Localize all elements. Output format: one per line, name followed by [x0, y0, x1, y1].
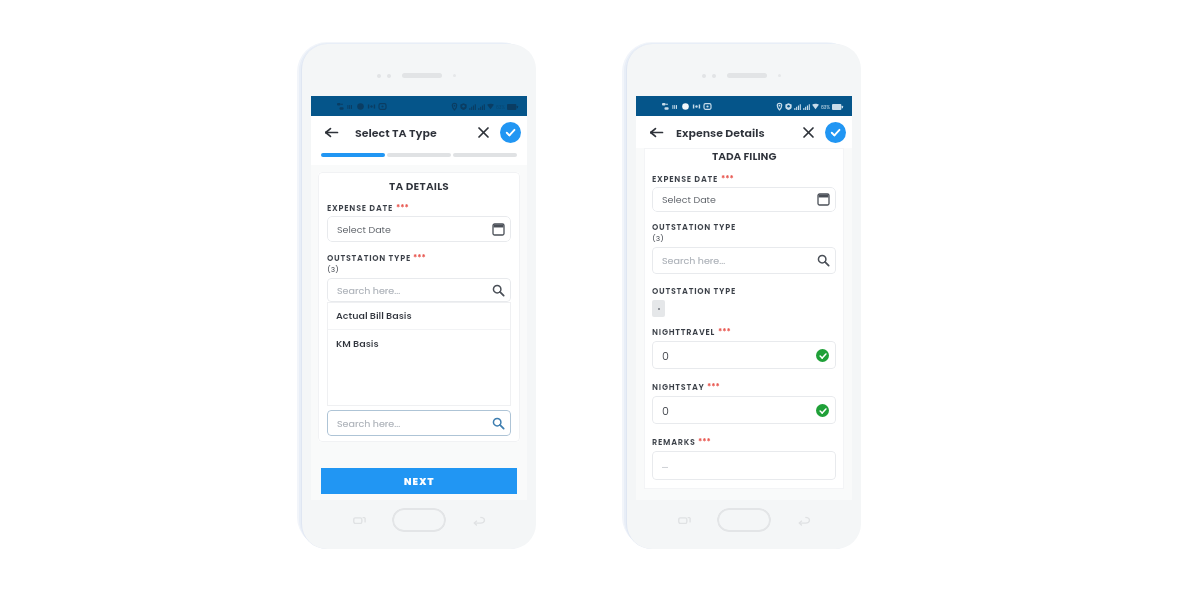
button[interactable]: 0 — [652, 396, 836, 424]
button[interactable]: 0 — [652, 341, 836, 369]
staticText: KM Basis — [336, 337, 379, 350]
staticText: *** — [698, 437, 711, 447]
staticText: *** — [718, 327, 731, 337]
staticText: Select TA Type — [355, 125, 437, 140]
staticText: *** — [413, 253, 426, 263]
staticText: TADA FILING — [712, 149, 777, 162]
button[interactable]: KM Basis — [327, 330, 511, 357]
staticText: 63% — [496, 104, 505, 110]
button[interactable]: Actual Bill Basis — [327, 302, 511, 329]
staticText: TA DETAILS — [389, 179, 449, 192]
staticText: EXPENSE DATE — [652, 174, 719, 184]
staticText: Search here... — [337, 417, 401, 430]
staticText: REMARKS — [652, 437, 696, 447]
button[interactable]: Back — [796, 512, 812, 528]
button[interactable]: Home — [717, 508, 771, 532]
staticText: *** — [721, 174, 734, 184]
staticText: NEXT — [404, 474, 435, 488]
button[interactable]: Confirm — [825, 122, 846, 143]
button[interactable]: Back — [471, 512, 487, 528]
staticText: 63% — [821, 104, 830, 110]
button[interactable]: Close — [799, 123, 817, 141]
button[interactable]: Search here... — [327, 278, 511, 302]
button[interactable]: Back — [321, 122, 341, 142]
staticText: OUTSTATION TYPE — [652, 286, 736, 296]
staticText: Select Date — [337, 223, 391, 236]
staticText: OUTSTATION TYPE — [652, 222, 736, 232]
staticText: Select Date — [662, 193, 716, 206]
staticText: 0 — [662, 403, 669, 418]
staticText: (3) — [652, 233, 664, 243]
staticText: NIGHTSTAY — [652, 382, 705, 392]
staticText: 0 — [662, 348, 669, 363]
staticText: Expense Details — [676, 125, 765, 140]
button[interactable]: NEXT — [321, 468, 517, 494]
staticText: (3) — [327, 264, 339, 274]
staticText: EXPENSE DATE — [327, 203, 394, 213]
button[interactable]: Close — [474, 123, 492, 141]
button[interactable]: Select Date — [652, 187, 836, 212]
staticText: Search here... — [337, 284, 401, 297]
button[interactable]: Back — [646, 122, 666, 142]
staticText: NIGHTTRAVEL — [652, 327, 716, 337]
button[interactable]: Confirm — [500, 122, 521, 143]
button[interactable]: Select Date — [327, 216, 511, 242]
staticText: *** — [396, 203, 409, 213]
button[interactable]: ... — [652, 451, 836, 480]
button[interactable]: Recents — [676, 512, 692, 528]
staticText: *** — [707, 382, 720, 392]
button[interactable]: Search here... — [652, 247, 836, 274]
button[interactable]: Recents — [351, 512, 367, 528]
staticText: OUTSTATION TYPE — [327, 253, 411, 263]
button[interactable]: Search here... — [327, 410, 511, 436]
button[interactable]: Home — [392, 508, 446, 532]
staticText: ... — [662, 458, 668, 471]
staticText: Search here... — [662, 254, 726, 267]
staticText: Actual Bill Basis — [336, 309, 412, 322]
button[interactable] — [652, 300, 665, 317]
